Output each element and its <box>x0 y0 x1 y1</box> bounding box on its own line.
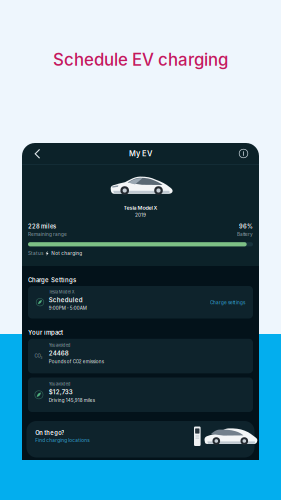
staticText: Schedule EV charging <box>53 49 228 70</box>
staticText: Find charging locations <box>35 437 89 443</box>
staticText: Status <box>28 250 43 256</box>
button[interactable]: Back <box>27 143 48 164</box>
staticText: Tesla Model X <box>123 204 157 211</box>
staticText: 24468 <box>49 350 69 357</box>
staticText: 2019 <box>135 212 146 218</box>
staticText: My EV <box>129 149 152 158</box>
staticText: On the go? <box>35 429 64 436</box>
staticText: Charge Settings <box>28 276 76 284</box>
button[interactable]: Information <box>233 143 254 164</box>
button[interactable]: Tesla Model X <box>28 286 253 318</box>
staticText: Your impact <box>28 329 63 336</box>
staticText: You avoided <box>49 343 71 348</box>
staticText: Charge settings <box>210 300 245 305</box>
staticText: $12,733 <box>49 388 73 396</box>
button[interactable]: On the go? <box>26 421 254 457</box>
staticText: Driving 145,918 miles <box>49 397 95 403</box>
staticText: Tesla Model X <box>49 289 75 294</box>
staticText: CO₂ <box>35 353 43 359</box>
staticText: Remaining range <box>28 231 67 237</box>
staticText: 228 miles <box>28 223 56 230</box>
staticText: Not charging <box>51 250 82 256</box>
staticText: Scheduled <box>49 296 83 304</box>
staticText: Pounds of CO2 emissions <box>49 359 104 364</box>
staticText: You avoided <box>49 381 71 386</box>
staticText: Battery <box>237 231 253 237</box>
staticText: 96% <box>239 223 253 230</box>
staticText: 9:00PM - 5:00AM <box>49 305 87 311</box>
